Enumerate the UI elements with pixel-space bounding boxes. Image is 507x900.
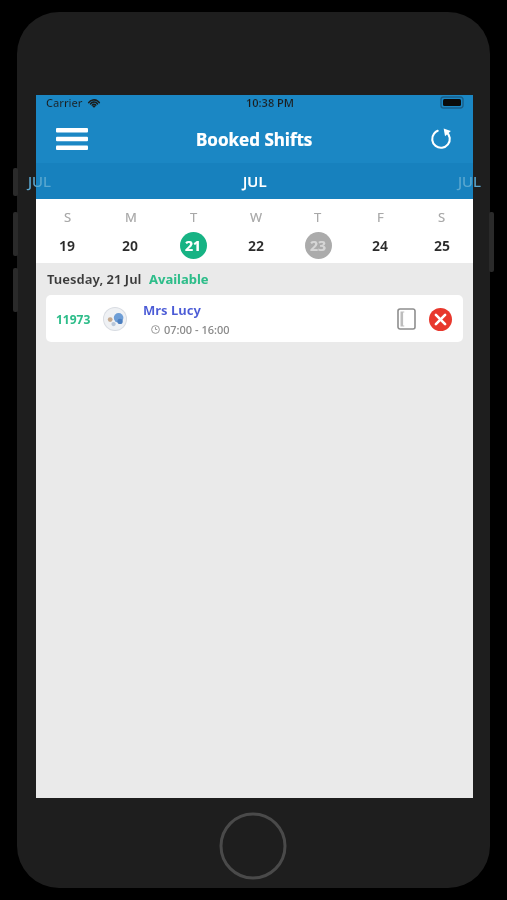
button[interactable]: T <box>162 199 225 263</box>
staticText: JUL <box>243 171 267 191</box>
staticText: S <box>438 208 446 226</box>
staticText: 10:38 PM <box>246 95 295 110</box>
staticText: Carrier <box>46 95 83 110</box>
staticText: 24 <box>372 236 389 255</box>
staticText: Tuesday, 21 Jul <box>47 270 142 288</box>
staticText: 11973 <box>56 311 91 327</box>
staticText: 19 <box>59 236 76 255</box>
staticText: 23 <box>310 236 327 255</box>
button[interactable]: T <box>287 199 349 263</box>
button[interactable]: Menu <box>50 117 94 161</box>
button[interactable]: Shift notes <box>391 304 421 334</box>
staticText: T <box>314 208 322 226</box>
staticText: 07:00 - 16:00 <box>164 322 230 337</box>
staticText: 20 <box>122 236 139 255</box>
staticText: JUL <box>458 171 481 191</box>
staticText: T <box>190 208 198 226</box>
staticText: 21 <box>185 236 202 255</box>
staticText: S <box>64 208 72 226</box>
staticText: W <box>250 208 263 226</box>
staticText: 22 <box>248 236 265 255</box>
button[interactable]: 11973 <box>46 295 463 342</box>
button[interactable]: Cancel shift <box>425 304 455 334</box>
staticText: F <box>377 208 384 226</box>
button[interactable]: S <box>411 199 473 263</box>
staticText: M <box>125 208 137 226</box>
button[interactable]: Refresh <box>421 119 461 159</box>
staticText: Mrs Lucy <box>143 301 201 319</box>
staticText: Booked Shifts <box>196 128 313 151</box>
button[interactable]: W <box>225 199 287 263</box>
button[interactable]: S <box>36 199 99 263</box>
button[interactable]: M <box>99 199 162 263</box>
staticText: JUL <box>28 171 51 191</box>
staticText: 25 <box>434 236 451 255</box>
button[interactable]: F <box>349 199 411 263</box>
staticText: Available <box>149 270 209 288</box>
